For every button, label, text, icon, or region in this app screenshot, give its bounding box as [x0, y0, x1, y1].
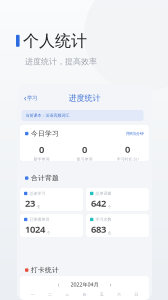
- staticText: 学习次数: [95, 217, 111, 222]
- staticText: 个: [107, 204, 111, 209]
- staticText: 个: [46, 230, 50, 235]
- staticText: 23: [25, 197, 35, 209]
- staticText: 今日学习: [31, 129, 59, 138]
- staticText: 当前课本：法语高频词汇: [25, 113, 69, 118]
- staticText: 五: [100, 292, 104, 297]
- staticText: 新学单词: [33, 157, 49, 161]
- staticText: 四: [82, 292, 86, 297]
- staticText: 次: [107, 230, 111, 235]
- staticText: 683: [91, 223, 106, 235]
- staticText: 三: [65, 292, 69, 297]
- button[interactable]: 总单词量: [86, 188, 149, 211]
- staticText: 0: [39, 143, 44, 156]
- staticText: 一: [31, 292, 35, 297]
- staticText: 总体学习: [29, 191, 45, 196]
- staticText: 打卡统计: [31, 266, 59, 274]
- staticText: 学习时长(分): [116, 156, 138, 162]
- staticText: ›: [109, 280, 111, 289]
- staticText: 合计背题: [31, 174, 59, 182]
- staticText: 总单词量: [95, 191, 111, 196]
- staticText: 二: [48, 292, 52, 297]
- staticText: 学习: [27, 95, 37, 101]
- staticText: 进度统计: [68, 93, 100, 103]
- staticText: 天: [36, 204, 40, 209]
- button[interactable]: ‹: [22, 91, 39, 105]
- staticText: 2022年04月: [70, 281, 98, 288]
- staticText: 已掌握单词: [29, 217, 49, 222]
- staticText: 复习单词: [76, 157, 92, 161]
- staticText: 日: [134, 292, 138, 297]
- staticText: 642: [91, 197, 106, 209]
- staticText: 用时0分钟: [126, 131, 144, 136]
- staticText: 0: [82, 143, 87, 156]
- button[interactable]: 下个月: [107, 279, 113, 290]
- staticText: ‹: [24, 93, 26, 103]
- button[interactable]: 总体学习: [20, 188, 83, 211]
- staticText: 个人统计: [23, 31, 87, 51]
- staticText: ‹: [57, 280, 59, 289]
- button[interactable]: 上个月: [55, 279, 61, 290]
- staticText: 六: [117, 292, 121, 297]
- staticText: 进度统计，提高效率: [25, 57, 97, 66]
- staticText: 0: [125, 143, 130, 155]
- button[interactable]: 已掌握单词: [20, 214, 83, 237]
- staticText: 1024: [25, 223, 45, 235]
- button[interactable]: 学习次数: [86, 214, 149, 237]
